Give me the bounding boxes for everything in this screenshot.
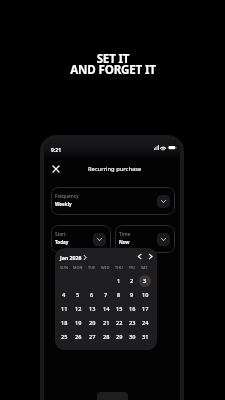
button[interactable]: Expand Start	[93, 233, 106, 246]
button[interactable]: 28	[100, 331, 112, 343]
staticText: 15	[116, 305, 123, 313]
button[interactable]: 4	[58, 289, 70, 301]
button[interactable]: 31	[139, 331, 151, 343]
staticText: 23	[129, 319, 136, 327]
button[interactable]: 18	[58, 317, 70, 329]
button[interactable]: 17	[139, 303, 151, 315]
button[interactable]: 26	[72, 331, 84, 343]
button[interactable]: Frequency	[51, 187, 175, 215]
button[interactable]: 2	[126, 275, 138, 287]
button[interactable]: 29	[113, 331, 125, 343]
button[interactable]: 14	[100, 303, 112, 315]
button[interactable]: 23	[126, 317, 138, 329]
staticText: SUN	[60, 265, 68, 270]
staticText: 24	[142, 319, 149, 327]
button[interactable]: 11	[58, 303, 70, 315]
button[interactable]: Jan 2026	[60, 254, 86, 261]
button[interactable]: 5	[72, 289, 84, 301]
staticText: 7	[104, 291, 108, 299]
button[interactable]: 9	[126, 289, 138, 301]
button[interactable]: 27	[86, 331, 98, 343]
staticText: 28	[103, 333, 110, 341]
staticText: 11	[61, 305, 68, 313]
button[interactable]: Close	[47, 160, 64, 177]
staticText: 10	[142, 291, 149, 299]
staticText: 14	[103, 305, 110, 313]
staticText: Start	[55, 231, 66, 238]
button[interactable]: 7	[100, 289, 112, 301]
staticText: Weekly	[55, 201, 72, 207]
staticText: 20	[89, 319, 96, 327]
staticText: 1	[117, 277, 121, 285]
staticText: Frequency	[55, 193, 79, 200]
button[interactable]: 10	[139, 289, 151, 301]
staticText: 17	[142, 305, 149, 313]
staticText: WED	[101, 265, 110, 270]
staticText: 19	[75, 319, 82, 327]
button[interactable]: 3	[139, 275, 151, 287]
button[interactable]: 30	[126, 331, 138, 343]
staticText: TUE	[88, 265, 96, 270]
staticText: 8	[117, 291, 121, 299]
staticText: MON	[73, 265, 83, 270]
staticText: 30	[129, 333, 136, 341]
button[interactable]: 6	[86, 289, 98, 301]
button[interactable]: Previous month	[132, 249, 146, 263]
button[interactable]: 19	[72, 317, 84, 329]
staticText: 18	[61, 319, 68, 327]
staticText: 16	[129, 305, 136, 313]
staticText: 13	[89, 305, 96, 313]
staticText: 5	[76, 291, 80, 299]
button[interactable]: Expand Time	[157, 233, 170, 246]
button[interactable]: 8	[113, 289, 125, 301]
staticText: 4	[62, 291, 66, 299]
staticText: 9:21	[51, 147, 61, 154]
staticText: 6	[90, 291, 94, 299]
staticText: Jan 2026	[60, 254, 82, 261]
button[interactable]: 1	[113, 275, 125, 287]
button[interactable]: 25	[58, 331, 70, 343]
button[interactable]: 12	[72, 303, 84, 315]
staticText: 27	[89, 333, 96, 341]
staticText: 22	[116, 319, 123, 327]
staticText: Now	[119, 239, 130, 245]
staticText: 29	[116, 333, 123, 341]
button[interactable]: 24	[139, 317, 151, 329]
button[interactable]: 16	[126, 303, 138, 315]
staticText: 3	[143, 277, 147, 285]
button[interactable]: 15	[113, 303, 125, 315]
button[interactable]: Next month	[143, 249, 157, 263]
button[interactable]: 20	[86, 317, 98, 329]
staticText: 25	[61, 333, 68, 341]
staticText: Recurring purchase	[88, 165, 142, 173]
staticText: 9	[130, 291, 134, 299]
button[interactable]: 13	[86, 303, 98, 315]
staticText: THU	[115, 265, 123, 270]
staticText: Today	[55, 239, 69, 245]
button[interactable]: Time	[115, 225, 175, 253]
button[interactable]: 22	[113, 317, 125, 329]
staticText: Time	[119, 231, 131, 238]
button[interactable]: 21	[100, 317, 112, 329]
staticText: 21	[103, 319, 110, 327]
staticText: 31	[142, 333, 149, 341]
staticText: FRI	[129, 265, 135, 270]
staticText: SET IT AND FORGET IT	[70, 51, 156, 78]
button[interactable]: Expand Frequency	[157, 195, 170, 208]
staticText: 26	[75, 333, 82, 341]
staticText: 12	[75, 305, 82, 313]
staticText: SAT	[141, 265, 148, 270]
button[interactable]: Start	[51, 225, 111, 253]
staticText: 2	[130, 277, 134, 285]
